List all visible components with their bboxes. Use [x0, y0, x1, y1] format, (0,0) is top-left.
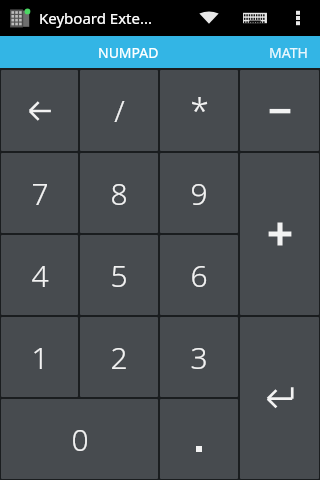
button[interactable]: 7	[1, 153, 78, 233]
button[interactable]: 9	[160, 153, 238, 233]
button[interactable]: *	[160, 70, 238, 151]
staticText: 9	[190, 173, 208, 214]
button[interactable]: More options	[282, 8, 314, 28]
button[interactable]: Backspace	[1, 70, 78, 151]
button[interactable]: /	[80, 70, 158, 151]
button[interactable]: 2	[80, 317, 158, 397]
button[interactable]: 1	[1, 317, 78, 397]
staticText: 6	[190, 255, 208, 296]
button[interactable]: Wi-Fi	[192, 7, 226, 29]
staticText: MATH	[269, 43, 308, 62]
button[interactable]: Keyboard	[238, 5, 272, 31]
button[interactable]: 0	[1, 399, 158, 479]
button[interactable]: Enter	[240, 317, 319, 479]
staticText: 8	[110, 173, 128, 214]
staticText: 2	[110, 337, 128, 378]
button[interactable]: 8	[80, 153, 158, 233]
staticText: NUMPAD	[98, 43, 159, 62]
staticText: 1	[31, 337, 49, 378]
button[interactable]: Decimal point	[160, 399, 238, 479]
button[interactable]: MATH	[256, 36, 320, 68]
button[interactable]: Minus	[240, 70, 319, 151]
staticText: 5	[110, 255, 128, 296]
staticText: 4	[31, 255, 49, 296]
staticText: Keyboard Exte...	[39, 8, 153, 28]
staticText: 3	[190, 337, 208, 378]
button[interactable]: Plus	[240, 153, 319, 315]
button[interactable]: 4	[1, 235, 78, 315]
button[interactable]: 3	[160, 317, 238, 397]
button[interactable]: NUMPAD	[0, 36, 256, 68]
button[interactable]: 5	[80, 235, 158, 315]
staticText: 7	[31, 173, 49, 214]
staticText: *	[190, 88, 209, 134]
button[interactable]: 6	[160, 235, 238, 315]
staticText: 0	[71, 419, 89, 460]
staticText: /	[114, 90, 125, 131]
